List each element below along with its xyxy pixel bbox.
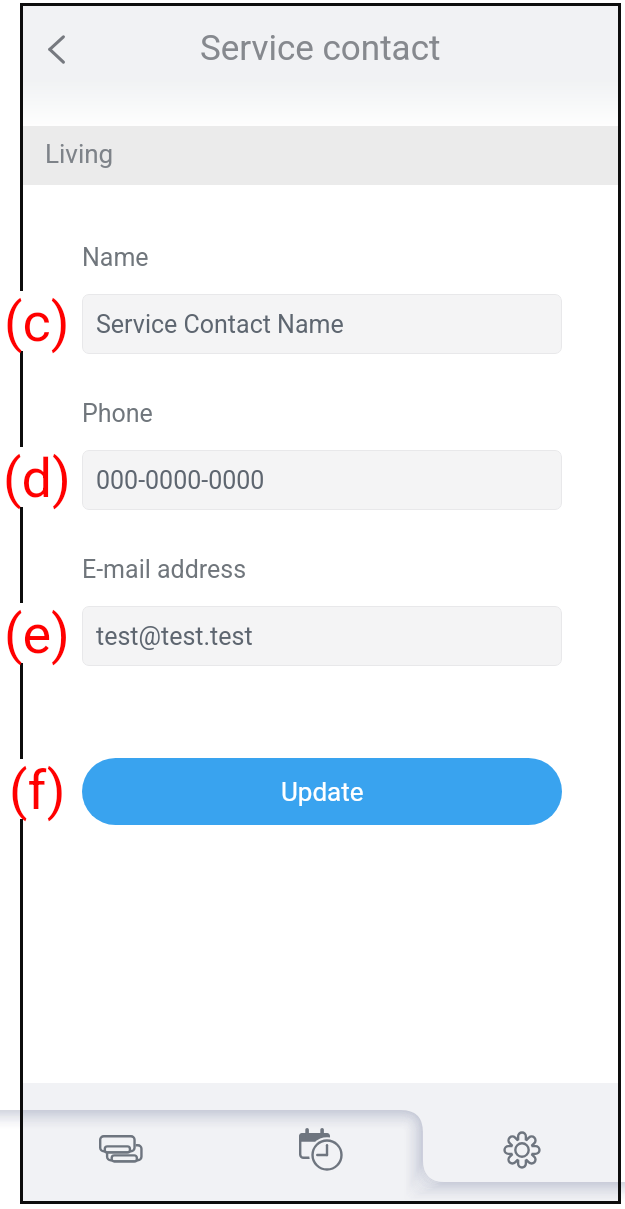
button[interactable]: test@test.test xyxy=(82,606,562,666)
button[interactable]: Schedule xyxy=(296,1123,348,1175)
button[interactable]: Settings xyxy=(496,1124,548,1176)
staticText: (e) xyxy=(4,603,70,666)
staticText: (f) xyxy=(9,759,66,822)
button[interactable]: Update xyxy=(82,758,562,825)
staticText: Update xyxy=(281,777,364,807)
staticText: Name xyxy=(82,243,149,272)
button[interactable]: Air conditioners xyxy=(95,1123,147,1175)
staticText: Phone xyxy=(82,399,153,428)
staticText: test@test.test xyxy=(96,622,253,651)
staticText: Living xyxy=(45,139,114,169)
button[interactable]: Back xyxy=(47,12,99,68)
staticText: Service Contact Name xyxy=(96,310,344,339)
staticText: E-mail address xyxy=(82,555,247,584)
staticText: (d) xyxy=(3,447,71,510)
staticText: 000-0000-0000 xyxy=(96,466,265,495)
staticText: (c) xyxy=(4,291,70,354)
button[interactable]: 000-0000-0000 xyxy=(82,450,562,510)
staticText: Service contact xyxy=(200,28,441,69)
button[interactable]: Service Contact Name xyxy=(82,294,562,354)
